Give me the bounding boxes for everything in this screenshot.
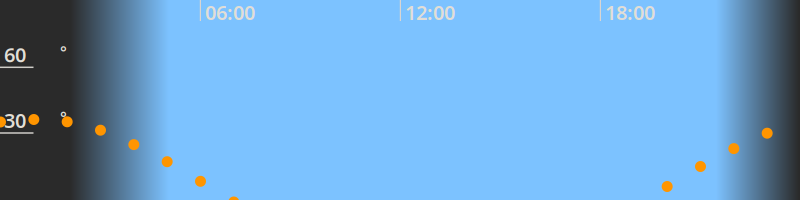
staticText: 30: [4, 107, 26, 134]
staticText: °: [60, 107, 67, 128]
staticText: 06:00: [205, 0, 255, 26]
staticText: °: [60, 41, 67, 62]
staticText: 18:00: [605, 0, 655, 26]
staticText: 60: [4, 41, 26, 68]
staticText: 12:00: [405, 0, 455, 26]
